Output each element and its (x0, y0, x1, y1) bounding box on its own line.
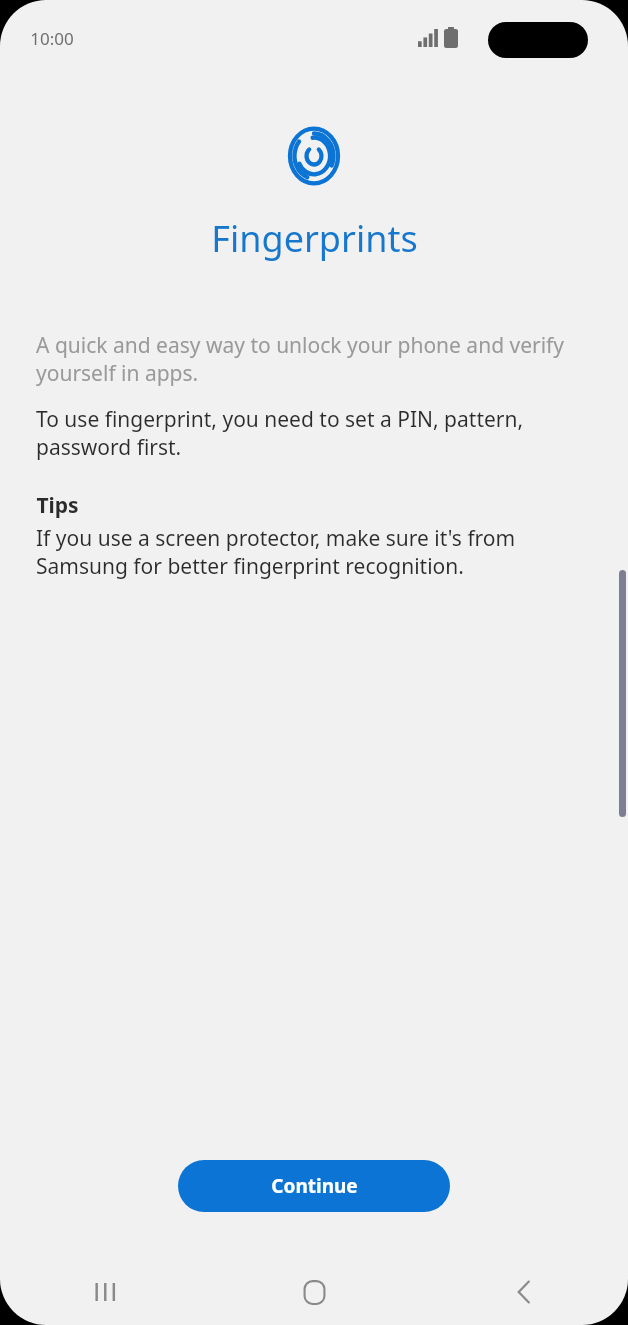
button[interactable]: Recent apps (0, 1259, 210, 1325)
staticText: Continue (271, 1173, 358, 1199)
staticText: To use fingerprint, you need to set a PI… (36, 405, 598, 461)
staticText: Fingerprints (211, 214, 418, 263)
button[interactable]: Continue (178, 1160, 450, 1212)
button[interactable]: Home (210, 1259, 419, 1325)
button[interactable]: Back (419, 1259, 628, 1325)
staticText: If you use a screen protector, make sure… (36, 524, 598, 580)
staticText: 10:00 (30, 27, 74, 50)
staticText: A quick and easy way to unlock your phon… (36, 331, 598, 387)
staticText: Tips (36, 491, 79, 520)
